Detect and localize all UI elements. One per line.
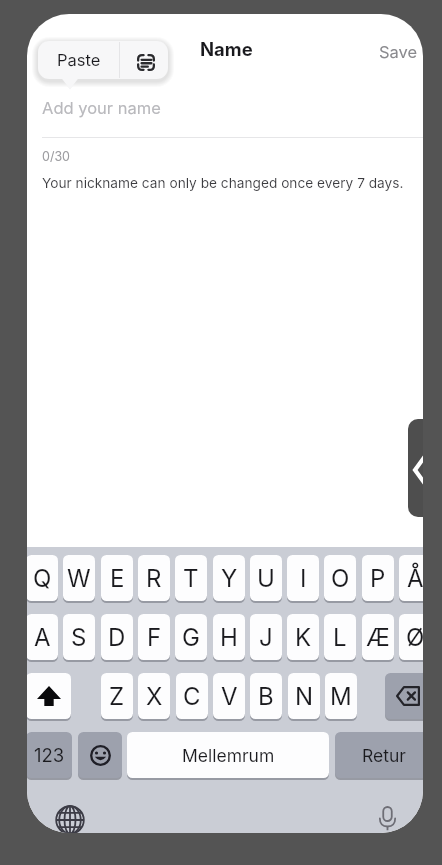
button[interactable]: Change keyboard [55,805,85,833]
staticText: A [34,623,51,652]
button[interactable]: S [63,614,95,660]
button[interactable]: N [288,673,320,719]
button[interactable]: Emoji [78,732,122,778]
staticText: H [220,623,238,652]
button[interactable]: L [324,614,356,660]
staticText: 123 [34,744,65,766]
staticText: T [183,564,199,593]
button[interactable]: X [138,673,170,719]
staticText: X [146,682,163,711]
button[interactable]: W [63,555,95,601]
staticText: Å [407,564,423,593]
button[interactable]: Y [213,555,245,601]
button[interactable]: C [176,673,208,719]
staticText: Y [221,564,238,593]
staticText: U [257,564,275,593]
button[interactable]: G [175,614,207,660]
staticText: R [146,564,162,593]
staticText: Æ [366,623,390,652]
staticText: L [333,623,347,652]
staticText: C [183,682,201,711]
button[interactable]: Save [368,32,423,72]
button[interactable]: B [250,673,282,719]
staticText: D [108,623,126,652]
staticText: Save [379,42,418,62]
button[interactable]: M [325,673,357,719]
staticText: Mellemrum [182,745,275,766]
button[interactable]: Z [101,673,133,719]
button[interactable]: Q [27,555,58,601]
staticText: I [300,564,307,593]
staticText: O [331,564,350,593]
staticText: Q [33,564,52,593]
button[interactable]: Retur [335,732,423,778]
staticText: F [147,623,162,652]
staticText: Name [200,38,253,60]
staticText: P [370,564,386,593]
button[interactable]: Backspace [385,673,423,719]
button[interactable]: 123 [27,732,72,778]
staticText: J [259,623,273,652]
staticText: 0/30 [42,149,70,164]
button[interactable]: I [287,555,319,601]
button[interactable]: F [138,614,170,660]
staticText: V [221,682,238,711]
button[interactable]: E [101,555,133,601]
staticText: Retur [362,745,406,766]
button[interactable]: T [175,555,207,601]
staticText: Paste [57,50,101,70]
staticText: Ø [406,623,423,652]
button[interactable]: V [213,673,245,719]
button[interactable]: H [213,614,245,660]
button[interactable]: Scan text [120,43,168,79]
button[interactable]: O [324,555,356,601]
staticText: B [258,682,274,711]
button[interactable]: R [138,555,170,601]
staticText: Z [109,682,125,711]
button[interactable]: K [287,614,319,660]
staticText: G [182,623,200,652]
button[interactable]: P [362,555,394,601]
staticText: Your nickname can only be changed once e… [42,175,404,192]
button[interactable]: Dictation [370,801,404,833]
staticText: Add your name [42,98,161,118]
button[interactable]: Å [399,555,423,601]
staticText: N [295,682,314,711]
button[interactable]: J [250,614,282,660]
button[interactable]: Ø [399,614,423,660]
button[interactable]: A [27,614,58,660]
button[interactable]: D [101,614,133,660]
staticText: E [110,564,125,593]
button[interactable]: Shift [27,673,71,719]
button[interactable]: Mellemrum [127,732,329,778]
button[interactable]: Paste [38,41,119,79]
staticText: W [67,564,91,593]
staticText: K [295,623,312,652]
button[interactable]: U [250,555,282,601]
staticText: M [330,682,352,711]
staticText: S [71,623,87,652]
button[interactable]: Back [408,419,423,517]
button[interactable]: Æ [362,614,394,660]
